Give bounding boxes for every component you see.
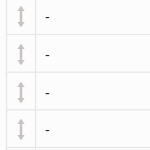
button[interactable]: Reorder item — [0, 34, 150, 72]
button[interactable]: Reorder item — [7, 34, 36, 72]
button[interactable]: Reorder item — [0, 0, 150, 34]
button[interactable]: Reorder item — [0, 109, 150, 147]
button[interactable]: Reorder item — [7, 72, 36, 110]
button[interactable]: Reorder item — [7, 0, 36, 34]
button[interactable]: Reorder item — [0, 147, 150, 150]
staticText: - — [45, 82, 50, 102]
staticText: - — [45, 44, 50, 64]
staticText: - — [45, 119, 50, 139]
button[interactable]: Reorder item — [7, 147, 36, 150]
staticText: - — [45, 6, 50, 26]
button[interactable]: Reorder item — [0, 72, 150, 110]
button[interactable]: Reorder item — [7, 109, 36, 147]
